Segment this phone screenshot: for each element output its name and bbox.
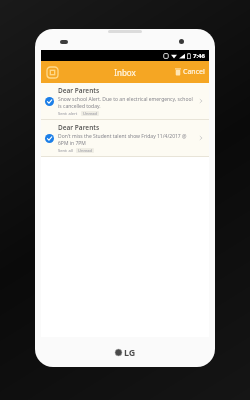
button[interactable]: Dear Parents [41,83,209,119]
staticText: Dear Parents [58,123,100,132]
staticText: Dear Parents [58,86,100,95]
staticText: Don't miss the Student talent show Frida… [58,133,196,146]
staticText: Unread [78,148,92,153]
staticText: Sent: alert [58,111,78,116]
button[interactable]: Menu [45,65,59,79]
button[interactable]: Cancel [175,67,205,77]
staticText: 7:46 [193,52,205,60]
button[interactable]: Open message [196,133,206,143]
staticText: Cancel [183,67,205,77]
staticText: Inbox [114,67,136,78]
staticText: Sent: all [58,148,73,153]
staticText: Snow school Alert. Due to an electrical … [58,96,196,109]
button[interactable]: Dear Parents [41,120,209,156]
staticText: LG [124,346,136,358]
staticText: Unread [83,111,97,116]
button[interactable]: Open message [196,96,206,106]
